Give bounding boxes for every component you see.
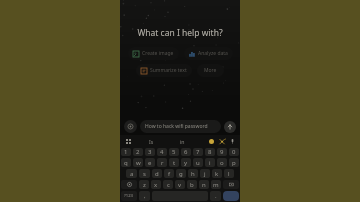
button[interactable]: . [210,191,221,201]
button[interactable]: Symbols [121,191,137,201]
button[interactable]: a [126,169,137,178]
button[interactable]: Theme [206,136,216,146]
button[interactable]: Send [224,121,236,133]
button[interactable]: Voice input [227,136,237,146]
button[interactable]: j [200,169,210,178]
button[interactable]: u [193,158,203,167]
button[interactable]: Is [146,137,157,146]
button[interactable]: h [188,169,198,178]
staticText: , [144,192,146,200]
button[interactable]: o [217,158,227,167]
button[interactable]: 4 [157,148,167,156]
button[interactable]: g [176,169,186,178]
staticText: e [148,159,152,167]
button[interactable]: q [121,158,131,167]
staticText: f [168,170,171,178]
button[interactable]: w [133,158,143,167]
button[interactable]: x [151,180,161,189]
staticText: a [130,170,134,178]
button[interactable]: More [197,64,224,77]
button[interactable]: v [175,180,185,189]
button[interactable]: Lens [124,120,137,133]
button[interactable]: 3 [145,148,155,156]
staticText: 1 [124,148,128,156]
button[interactable]: k [212,169,222,178]
staticText: t [173,159,176,167]
staticText: 7 [196,148,200,156]
button[interactable]: in [177,137,188,146]
button[interactable]: Summarize text [136,64,192,77]
staticText: j [204,170,206,178]
staticText: 2 [136,148,140,156]
staticText: 0 [232,148,236,156]
button[interactable]: p [229,158,239,167]
staticText: in [180,138,185,145]
staticText: q [124,159,128,167]
button[interactable]: Shift [121,180,137,189]
staticText: Summarize text [150,67,187,74]
button[interactable]: c [163,180,173,189]
staticText: b [190,181,194,189]
button[interactable]: y [181,158,191,167]
staticText: k [215,170,219,178]
button[interactable]: m [211,180,221,189]
button[interactable]: f [164,169,174,178]
button[interactable]: 1 [121,148,131,156]
button[interactable]: Enter [223,191,239,201]
staticText: v [178,181,182,189]
staticText: p [232,159,236,167]
button[interactable]: Clipboard [123,136,133,146]
button[interactable]: z [139,180,149,189]
button[interactable]: n [199,180,209,189]
button[interactable]: r [157,158,167,167]
button[interactable]: 6 [181,148,191,156]
button[interactable]: 7 [193,148,203,156]
button[interactable]: AI assist [217,136,227,146]
staticText: h [191,170,195,178]
staticText: 5 [172,148,176,156]
button[interactable]: l [224,169,234,178]
staticText: What can I help with? [137,27,223,39]
staticText: Analyze data [198,50,228,57]
button[interactable]: i [205,158,215,167]
button[interactable]: Backspace [223,180,239,189]
staticText: 4 [160,148,164,156]
button[interactable]: 8 [205,148,215,156]
button[interactable]: 0 [229,148,239,156]
staticText: m [213,181,219,189]
staticText: x [154,181,158,189]
staticText: c [167,181,170,189]
staticText: 8 [208,148,212,156]
staticText: Is [149,138,154,145]
button[interactable]: 9 [217,148,227,156]
staticText: y [184,159,188,167]
staticText: l [228,170,230,178]
staticText: More [204,67,217,74]
staticText: g [179,170,183,178]
button[interactable]: 2 [133,148,143,156]
staticText: 6 [184,148,188,156]
button[interactable]: b [187,180,197,189]
staticText: . [215,192,217,200]
button[interactable]: t [169,158,179,167]
staticText: u [196,159,200,167]
button[interactable]: Create image [128,47,179,60]
staticText: n [202,181,206,189]
button[interactable]: e [145,158,155,167]
button[interactable]: How to hack wifi password [140,120,221,133]
button[interactable]: d [152,169,162,178]
staticText: z [143,181,146,189]
staticText: o [220,159,224,167]
button[interactable]: , [139,191,150,201]
button[interactable]: s [139,169,150,178]
staticText: Create image [142,50,174,57]
button[interactable]: Analyze data [184,47,233,60]
staticText: r [161,159,164,167]
staticText: 9 [220,148,224,156]
staticText: s [143,170,146,178]
staticText: ?123 [124,193,134,199]
staticText: i [209,159,211,167]
button[interactable]: 5 [169,148,179,156]
staticText: How to hack wifi password [145,123,208,130]
